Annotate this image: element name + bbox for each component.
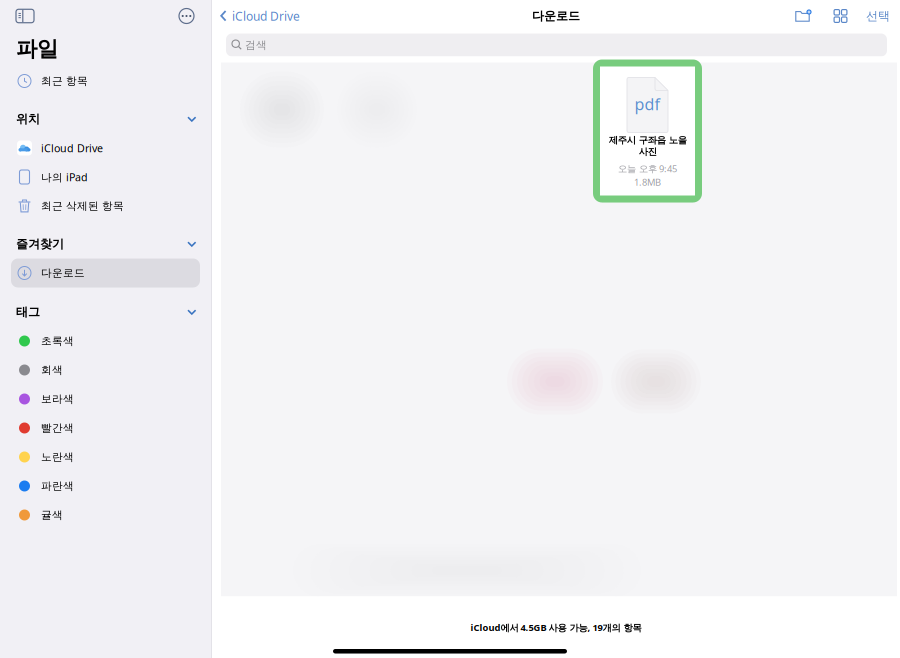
staticText: 1.8MB [634, 176, 661, 188]
button[interactable]: 다운로드 [0, 258, 211, 287]
button[interactable]: Toggle sidebar [10, 3, 40, 29]
staticText: 태그 [16, 305, 40, 319]
button[interactable]: 귤색 [0, 500, 211, 529]
staticText: 나의 iPad [41, 170, 88, 184]
button[interactable]: Collapse 위치 [183, 109, 198, 129]
button[interactable]: 보라색 [0, 384, 211, 413]
staticText: 파란색 [41, 479, 74, 492]
button[interactable]: New folder [788, 4, 825, 28]
staticText: 귤색 [41, 508, 63, 521]
button[interactable]: Collapse 즐겨찾기 [183, 234, 198, 254]
staticText: 제주시 구좌읍 노을 사진 [608, 134, 686, 157]
staticText: 검색 [245, 38, 267, 51]
staticText: 선택 [866, 9, 890, 23]
staticText: pdf [634, 93, 660, 115]
staticText: 보라색 [41, 392, 74, 405]
staticText: 노란색 [41, 450, 74, 463]
staticText: 다운로드 [532, 9, 580, 23]
staticText: 위치 [16, 112, 40, 126]
button[interactable]: iCloud Drive [0, 133, 211, 162]
staticText: iCloud에서 4.5GB 사용 가능, 19개의 항목 [470, 621, 641, 634]
button[interactable]: 초록색 [0, 326, 211, 355]
button[interactable]: 나의 iPad [0, 162, 211, 191]
button[interactable]: 선택 [856, 4, 893, 28]
button[interactable]: 파란색 [0, 471, 211, 500]
staticText: 최근 삭제된 항목 [41, 199, 124, 212]
button[interactable]: 최근 삭제된 항목 [0, 191, 211, 220]
button[interactable]: pdf [593, 59, 702, 202]
staticText: iCloud Drive [41, 141, 103, 155]
button[interactable]: More options [173, 2, 200, 29]
staticText: 빨간색 [41, 421, 74, 434]
staticText: 파일 [16, 36, 58, 62]
button[interactable]: iCloud Drive [212, 0, 306, 32]
staticText: 최근 항목 [41, 74, 88, 87]
staticText: 회색 [41, 363, 63, 376]
button[interactable]: 검색 [212, 32, 900, 56]
staticText: iCloud Drive [232, 8, 300, 24]
staticText: 오늘 오후 9:45 [618, 162, 677, 175]
staticText: 즐겨찾기 [16, 237, 64, 251]
button[interactable]: View options [825, 4, 856, 27]
button[interactable]: Collapse 태그 [183, 302, 198, 322]
button[interactable]: 노란색 [0, 442, 211, 471]
button[interactable]: 회색 [0, 355, 211, 384]
staticText: 다운로드 [41, 266, 85, 279]
button[interactable]: 최근 항목 [0, 66, 211, 95]
staticText: 초록색 [41, 334, 74, 347]
button[interactable]: 빨간색 [0, 413, 211, 442]
